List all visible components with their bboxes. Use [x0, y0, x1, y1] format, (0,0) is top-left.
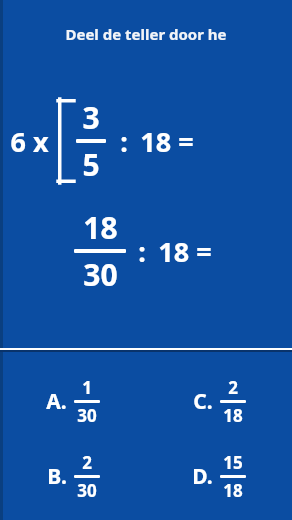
button[interactable]: A. — [46, 376, 100, 427]
staticText: D. — [192, 462, 213, 491]
staticText: 30 — [77, 479, 97, 502]
staticText: A. — [46, 387, 67, 416]
staticText: 3 — [82, 97, 100, 138]
staticText: 15 — [223, 451, 243, 474]
staticText: 18 = — [140, 123, 194, 160]
staticText: 1 — [82, 376, 92, 399]
staticText: 18 — [223, 404, 243, 427]
staticText: Deel de teller door he — [65, 24, 227, 44]
staticText: : — [120, 123, 128, 160]
staticText: 6 x — [10, 123, 49, 160]
button[interactable]: D. — [192, 451, 246, 502]
staticText: 18 — [83, 207, 118, 248]
staticText: C. — [193, 387, 213, 416]
staticText: 30 — [83, 254, 118, 295]
staticText: 2 — [82, 451, 92, 474]
staticText: 2 — [228, 376, 238, 399]
button[interactable]: C. — [193, 376, 246, 427]
staticText: 30 — [77, 404, 97, 427]
staticText: B. — [47, 462, 67, 491]
button[interactable]: B. — [47, 451, 100, 502]
staticText: 18 = — [158, 233, 212, 270]
staticText: 18 — [223, 479, 243, 502]
button[interactable]: Deel de teller door he — [0, 24, 292, 44]
staticText: : — [138, 233, 146, 270]
staticText: 5 — [82, 144, 100, 185]
